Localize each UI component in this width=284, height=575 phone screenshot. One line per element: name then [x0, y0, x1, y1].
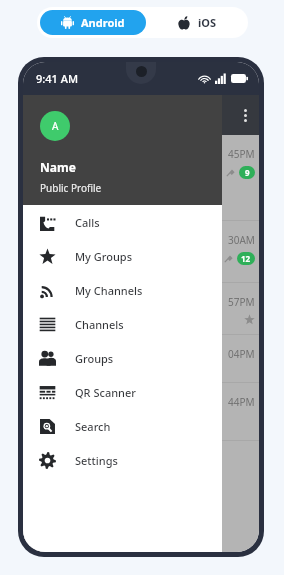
staticText: 12	[241, 253, 251, 264]
staticText: 04PM	[228, 347, 255, 361]
staticText: 57PM	[228, 295, 255, 309]
button[interactable]: 45PM	[23, 135, 259, 221]
button[interactable]: My Channels	[23, 273, 222, 307]
staticText: Channels	[75, 317, 124, 332]
staticText: Groups	[75, 351, 114, 366]
button[interactable]: A	[23, 95, 222, 205]
button[interactable]: iOS	[146, 7, 248, 38]
button[interactable]: 04PM	[23, 335, 259, 383]
button[interactable]: More options	[244, 109, 247, 122]
button[interactable]: Search	[23, 409, 222, 443]
staticText: Name	[40, 159, 76, 175]
staticText: Android	[81, 15, 125, 30]
button[interactable]: My Groups	[23, 239, 222, 273]
staticText: 44PM	[228, 395, 255, 409]
button[interactable]: 30AM	[23, 221, 259, 283]
staticText: Search	[75, 419, 111, 434]
button[interactable]: 57PM	[23, 283, 259, 335]
staticText: 30AM	[228, 233, 255, 247]
button[interactable]: 44PM	[23, 383, 259, 441]
staticText: 9	[245, 167, 250, 178]
staticText: My Groups	[75, 249, 132, 264]
staticText: A	[52, 119, 59, 133]
staticText: Public Profile	[40, 181, 102, 195]
button[interactable]: Calls	[23, 205, 222, 239]
button[interactable]: Settings	[23, 443, 222, 477]
staticText: My Channels	[75, 283, 143, 298]
button[interactable]: Groups	[23, 341, 222, 375]
button[interactable]: Android	[40, 10, 146, 35]
button[interactable]: Channels	[23, 307, 222, 341]
staticText: 9:41 AM	[36, 71, 79, 86]
staticText: iOS	[198, 15, 217, 30]
staticText: Settings	[75, 453, 118, 468]
staticText: Calls	[75, 215, 100, 230]
staticText: QR Scanner	[75, 385, 136, 400]
staticText: 45PM	[228, 147, 255, 161]
button[interactable]: QR Scanner	[23, 375, 222, 409]
